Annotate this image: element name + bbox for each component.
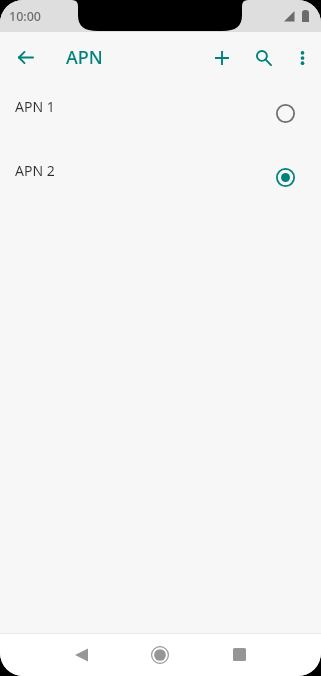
button[interactable]: APN 2 [0, 146, 321, 210]
staticText: APN 2 [15, 161, 55, 180]
button[interactable]: Home [136, 633, 184, 676]
button[interactable]: Search [242, 36, 285, 79]
staticText: APN 1 [15, 97, 55, 116]
staticText: APN [66, 45, 103, 70]
button[interactable]: Navigate up [2, 34, 49, 81]
button[interactable]: Back [57, 633, 105, 676]
button[interactable]: Add APN [200, 36, 243, 79]
button[interactable]: More options [281, 36, 321, 79]
staticText: 10:00 [9, 8, 42, 25]
button[interactable]: Recent apps [215, 633, 263, 676]
button[interactable]: APN 1 [0, 82, 321, 146]
